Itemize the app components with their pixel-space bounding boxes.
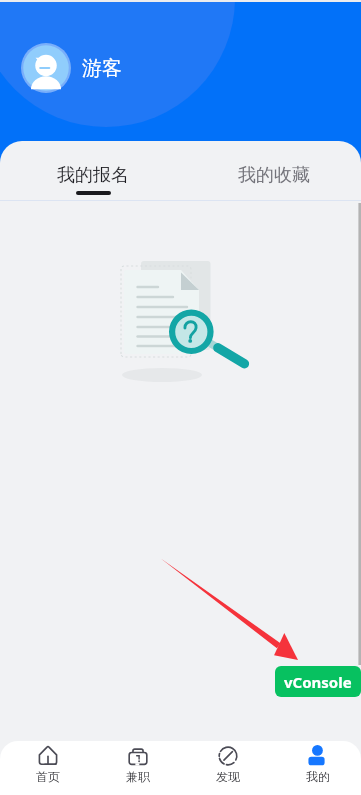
button[interactable]: 我的收藏 xyxy=(183,141,361,200)
staticText: vConsole xyxy=(284,672,352,692)
staticText: 我的报名 xyxy=(57,164,129,187)
button[interactable]: 我的报名 xyxy=(3,141,183,200)
button[interactable]: 我的 xyxy=(271,741,361,795)
staticText: 游客 xyxy=(82,56,122,81)
button[interactable]: vConsole xyxy=(275,666,361,697)
staticText: 发现 xyxy=(216,769,240,784)
staticText: 首页 xyxy=(36,769,60,784)
staticText: 我的收藏 xyxy=(238,164,310,187)
button[interactable]: 发现 xyxy=(181,741,271,795)
button[interactable]: 兼职 xyxy=(91,741,181,795)
button[interactable]: 首页 xyxy=(0,741,91,795)
staticText: 我的 xyxy=(306,769,330,784)
staticText: 兼职 xyxy=(126,769,150,784)
